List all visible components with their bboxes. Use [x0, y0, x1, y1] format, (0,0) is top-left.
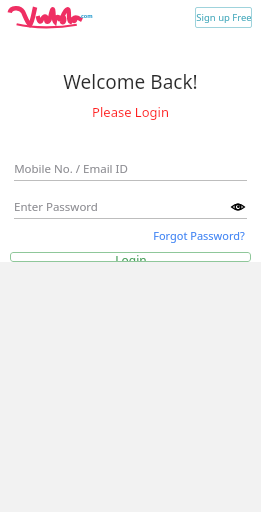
button[interactable]: Sign up Free: [195, 7, 252, 28]
button[interactable]: Forgot Password?: [151, 226, 247, 245]
button[interactable]: Mobile No. / Email ID: [14, 158, 247, 180]
staticText: Sign up Free: [196, 11, 252, 24]
button[interactable]: Login: [10, 252, 251, 262]
button[interactable]: Enter Password: [14, 196, 247, 218]
other: Vichole.com logo: [8, 4, 94, 30]
staticText: Forgot Password?: [153, 228, 245, 243]
staticText: Welcome Back!: [63, 69, 198, 95]
staticText: .com: [79, 12, 93, 19]
staticText: Mobile No. / Email ID: [14, 161, 128, 177]
button[interactable]: Show password: [229, 198, 247, 216]
staticText: Login: [115, 252, 147, 262]
staticText: Please Login: [92, 103, 169, 121]
staticText: Enter Password: [14, 199, 98, 215]
